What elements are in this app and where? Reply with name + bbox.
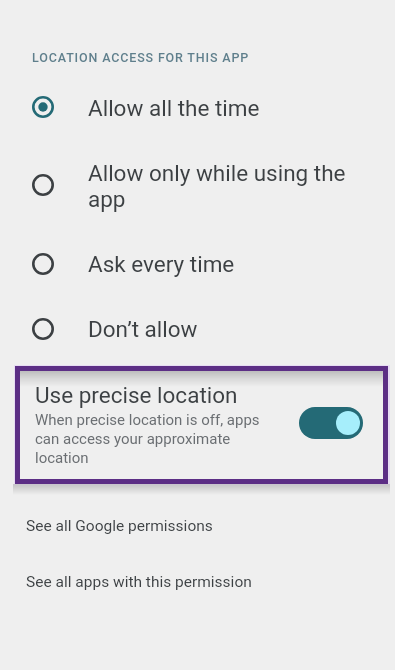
staticText: Don’t allow [88,316,346,342]
button[interactable]: See all apps with this permission [0,561,395,603]
staticText: See all apps with this permission [26,573,252,591]
staticText: Ask every time [88,251,346,277]
button[interactable]: Use precise location toggle [299,407,363,439]
button[interactable]: Use precise location [20,371,383,479]
staticText: See all Google permissions [26,517,213,535]
button[interactable]: Allow only while using the app [0,141,395,239]
staticText: When precise location is off, apps can a… [35,411,267,466]
button[interactable]: Don’t allow [0,297,395,357]
staticText: Allow only while using the app [88,160,346,212]
button[interactable]: See all Google permissions [0,505,395,547]
button[interactable]: Ask every time [0,232,395,292]
staticText: Allow all the time [88,95,346,121]
staticText: LOCATION ACCESS FOR THIS APP [32,50,250,65]
button[interactable]: Allow all the time [0,76,395,136]
staticText: Use precise location [35,382,238,408]
